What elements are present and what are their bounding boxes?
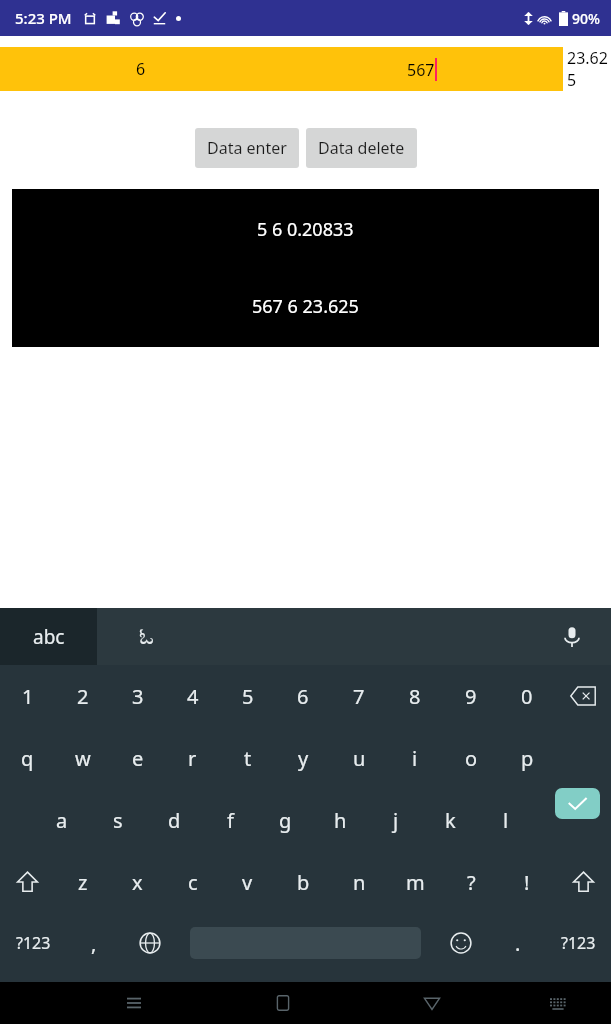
button[interactable]: 6 [0, 47, 281, 91]
staticText: t [244, 745, 252, 772]
button[interactable]: z [55, 851, 110, 913]
button[interactable]: t [220, 727, 275, 789]
button[interactable]: ? [443, 851, 499, 913]
button[interactable]: Data delete [306, 128, 417, 168]
button[interactable]: f [202, 789, 258, 851]
button[interactable]: Shift [0, 851, 55, 913]
staticText: ಓ [139, 626, 154, 648]
button[interactable]: d [146, 789, 202, 851]
button[interactable]: p [499, 727, 555, 789]
button[interactable]: Hide keyboard [537, 982, 579, 1024]
staticText: o [465, 745, 478, 772]
button[interactable]: j [368, 789, 423, 851]
button[interactable]: k [423, 789, 478, 851]
button[interactable]: g [258, 789, 313, 851]
button[interactable]: Change language [121, 913, 179, 973]
button[interactable]: 1 [0, 665, 55, 727]
button[interactable]: h [313, 789, 368, 851]
button[interactable]: Kannada layout [125, 616, 167, 658]
button[interactable]: 9 [443, 665, 499, 727]
button[interactable]: Shift [555, 851, 611, 913]
button[interactable]: ! [499, 851, 555, 913]
button[interactable]: 7 [331, 665, 387, 727]
staticText: h [334, 807, 347, 834]
staticText: q [21, 745, 34, 772]
button[interactable]: x [110, 851, 165, 913]
button[interactable]: 0 [499, 665, 555, 727]
button[interactable]: 23.625 [563, 47, 611, 91]
button[interactable]: i [387, 727, 443, 789]
button[interactable]: 4 [165, 665, 220, 727]
staticText: x [132, 869, 143, 896]
button[interactable]: , [66, 913, 121, 973]
staticText: 23.625 [567, 47, 611, 91]
button[interactable]: w [55, 727, 110, 789]
button[interactable]: c [165, 851, 220, 913]
button[interactable]: a [34, 789, 90, 851]
staticText: 6 [297, 683, 309, 710]
staticText: s [113, 807, 123, 834]
button[interactable]: 5 [220, 665, 275, 727]
staticText: Data delete [318, 137, 405, 159]
button[interactable]: q [0, 727, 55, 789]
button[interactable]: b [275, 851, 331, 913]
button[interactable]: 6 [275, 665, 331, 727]
staticText: ?123 [561, 932, 596, 954]
staticText: 2 [77, 683, 89, 710]
button[interactable]: Recent apps [113, 982, 155, 1024]
button[interactable]: v [220, 851, 275, 913]
button[interactable]: m [387, 851, 443, 913]
staticText: 3 [132, 683, 144, 710]
button[interactable]: Backspace [555, 665, 611, 727]
button[interactable]: o [443, 727, 499, 789]
staticText: 567 6 23.625 [252, 294, 359, 319]
button[interactable]: abc [0, 608, 97, 665]
button[interactable]: Emoji [432, 913, 490, 973]
staticText: j [393, 807, 399, 834]
button[interactable]: y [275, 727, 331, 789]
button[interactable]: Data enter [195, 128, 299, 168]
staticText: 567 [407, 59, 435, 81]
staticText: , [91, 930, 97, 957]
button[interactable]: n [331, 851, 387, 913]
staticText: 4 [187, 683, 199, 710]
button[interactable]: l [478, 789, 533, 851]
staticText: r [188, 745, 197, 772]
staticText: 7 [353, 683, 365, 710]
staticText: e [132, 745, 144, 772]
button[interactable]: . [490, 913, 545, 973]
button[interactable]: s [90, 789, 146, 851]
staticText: 9 [465, 683, 477, 710]
button[interactable]: r [165, 727, 220, 789]
staticText: k [445, 807, 456, 834]
staticText: 5 [242, 683, 254, 710]
staticText: . [515, 930, 521, 957]
button[interactable]: 567 [281, 47, 563, 91]
staticText: v [242, 869, 253, 896]
button[interactable]: u [331, 727, 387, 789]
staticText: abc [33, 624, 65, 650]
button[interactable]: Voice input [557, 622, 587, 652]
button[interactable]: e [110, 727, 165, 789]
button[interactable]: 8 [387, 665, 443, 727]
staticText: n [353, 869, 366, 896]
staticText: 5:23 PM [15, 8, 72, 28]
staticText: f [227, 807, 234, 834]
staticText: 90% [572, 9, 600, 28]
button[interactable]: Back [411, 982, 453, 1024]
staticText: ! [524, 869, 530, 896]
button[interactable]: Enter [555, 788, 600, 819]
staticText: u [353, 745, 366, 772]
button[interactable]: 5 6 0.20833 [12, 189, 599, 347]
button[interactable]: 3 [110, 665, 165, 727]
staticText: c [188, 869, 198, 896]
staticText: y [298, 745, 309, 772]
button[interactable]: ?123 [545, 913, 611, 973]
button[interactable]: 2 [55, 665, 110, 727]
button[interactable]: ?123 [0, 913, 66, 973]
button[interactable]: Home [262, 982, 304, 1024]
staticText: 0 [521, 683, 533, 710]
staticText: z [78, 869, 88, 896]
staticText: w [75, 745, 91, 772]
